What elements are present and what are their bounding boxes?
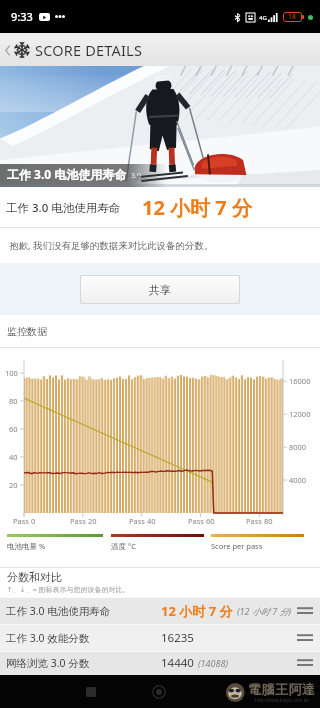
staticText: 温度 °C <box>111 541 136 551</box>
staticText: 4G <box>259 14 267 22</box>
staticText: 3.0 <box>131 171 141 181</box>
staticText: ↑、↓、= 图标表示与您的设备的对比。 <box>7 585 130 595</box>
staticText: 60 <box>9 424 18 434</box>
staticText: 12 小时 7 分 <box>142 194 252 221</box>
staticText: 18 <box>288 12 297 22</box>
staticText: 80 <box>9 396 18 406</box>
button[interactable]: Home <box>146 679 172 705</box>
staticText: 20 <box>9 480 18 490</box>
staticText: 14440 <box>161 655 194 671</box>
staticText: http://www.kocpc.com.tw <box>255 697 309 703</box>
staticText: 100 <box>5 368 18 378</box>
staticText: (12 小时 7 分) <box>237 605 292 617</box>
staticText: 16000 <box>289 376 311 386</box>
staticText: 16235 <box>161 630 194 646</box>
staticText: Pass 80 <box>246 516 273 526</box>
staticText: SCORE DETAILS <box>35 40 143 60</box>
button[interactable]: Recents <box>78 679 104 705</box>
button[interactable]: 共享 <box>80 275 240 304</box>
staticText: 工作 3.0 电池使用寿命 <box>6 604 161 618</box>
staticText: 分数和对比 <box>7 570 62 584</box>
staticText: 工作 3.0 电池使用寿命 <box>7 166 127 182</box>
staticText: 12000 <box>289 409 311 419</box>
staticText: 共享 <box>149 283 171 297</box>
button[interactable]: Back <box>2 45 13 56</box>
staticText: Pass 60 <box>188 516 215 526</box>
staticText: 抱歉, 我们没有足够的数据来对比此设备的分数。 <box>9 239 214 252</box>
staticText: 40 <box>9 452 18 462</box>
staticText: 8000 <box>289 442 307 452</box>
staticText: 电池电量 % <box>7 541 46 551</box>
staticText: 4000 <box>289 475 307 485</box>
button[interactable]: 网络浏览 3.0 分数 <box>0 651 320 675</box>
staticText: 工作 3.0 效能分数 <box>6 631 161 645</box>
staticText: Score per pass <box>211 541 263 551</box>
button[interactable]: 工作 3.0 电池使用寿命 <box>0 597 320 624</box>
staticText: 12 小时 7 分 <box>161 602 233 620</box>
staticText: 電腦王阿達 <box>248 681 316 697</box>
staticText: Pass 0 <box>13 516 36 526</box>
staticText: Pass 40 <box>129 516 156 526</box>
staticText: 监控数据 <box>7 325 47 338</box>
staticText: 网络浏览 3.0 分数 <box>6 656 161 670</box>
button[interactable]: 工作 3.0 效能分数 <box>0 624 320 651</box>
staticText: 工作 3.0 电池使用寿命 <box>6 200 121 216</box>
staticText: 9:33 <box>11 9 33 24</box>
staticText: (14088) <box>198 657 229 669</box>
staticText: Pass 20 <box>70 516 97 526</box>
